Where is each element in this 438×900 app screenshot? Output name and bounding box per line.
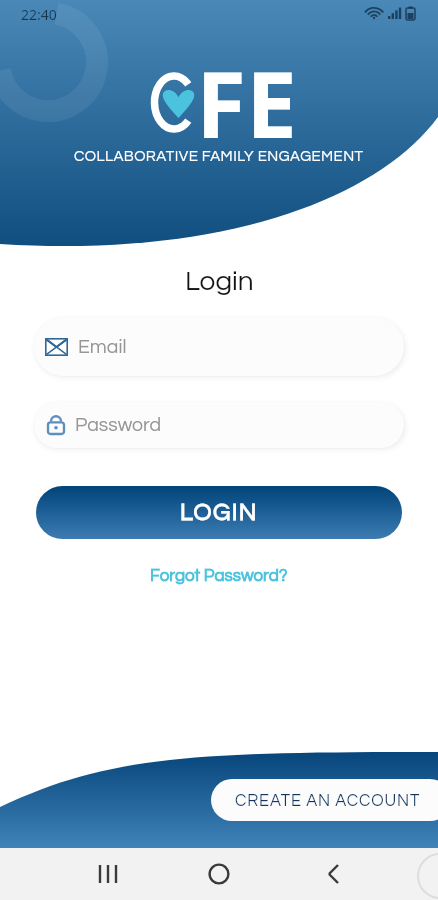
staticText: COLLABORATIVE FAMILY ENGAGEMENT xyxy=(74,149,364,164)
staticText: CREATE AN ACCOUNT xyxy=(235,792,421,809)
staticText: Email xyxy=(78,337,127,357)
button[interactable]: Forgot Password? xyxy=(150,567,288,585)
button[interactable]: Back xyxy=(304,848,364,900)
button[interactable]: Password xyxy=(34,402,404,448)
button[interactable]: Home xyxy=(189,848,249,900)
staticText: Login xyxy=(185,267,254,296)
button[interactable]: CREATE AN ACCOUNT xyxy=(211,779,438,821)
staticText: FE xyxy=(196,41,297,165)
button[interactable]: LOGIN xyxy=(36,486,402,539)
staticText: LOGIN xyxy=(180,500,258,525)
staticText: 22:40 xyxy=(21,5,57,24)
button[interactable]: Email xyxy=(34,317,404,376)
button[interactable]: Recent apps xyxy=(78,848,138,900)
staticText: Password xyxy=(75,415,162,435)
